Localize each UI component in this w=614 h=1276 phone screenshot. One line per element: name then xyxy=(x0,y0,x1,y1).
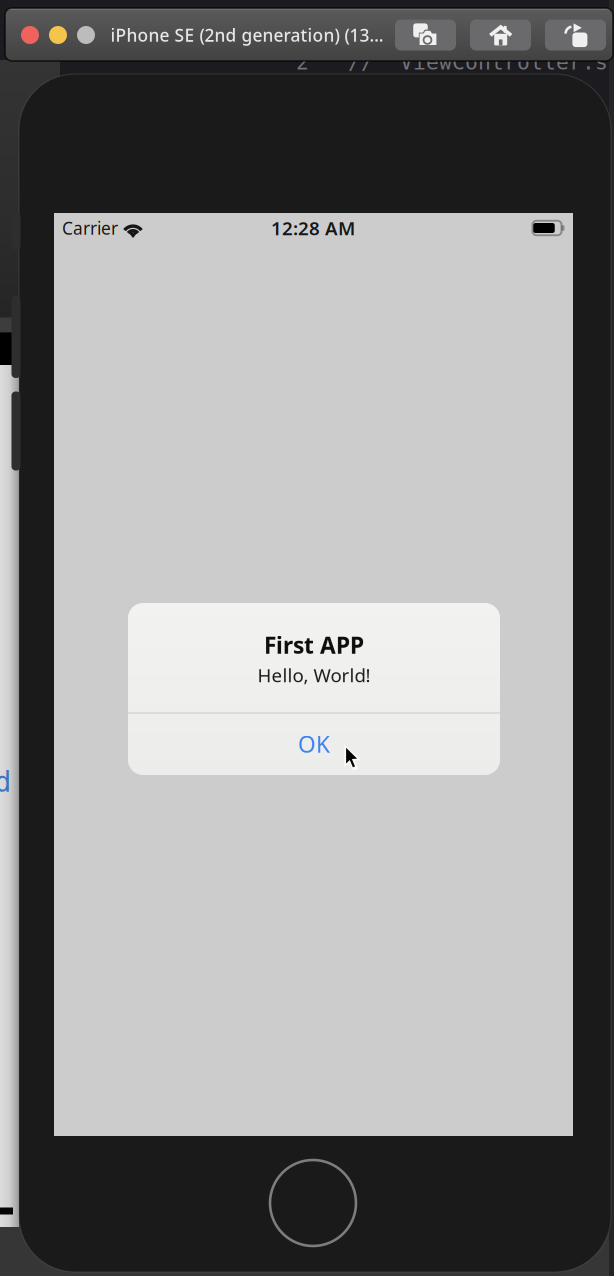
staticText: OK xyxy=(298,729,330,759)
staticText: iPhone SE (2nd generation) (13… xyxy=(110,23,383,46)
staticText: 12:28 AM xyxy=(271,216,355,240)
staticText: 2 // ViewController.s xyxy=(296,50,608,74)
staticText: First APP xyxy=(264,630,364,660)
staticText: d xyxy=(0,766,11,798)
button[interactable]: Home xyxy=(470,19,531,50)
button[interactable]: Rotate xyxy=(545,19,606,50)
staticText: Carrier xyxy=(62,216,118,239)
staticText: Hello, World! xyxy=(257,663,370,687)
button[interactable]: OK xyxy=(128,713,500,775)
button[interactable]: Screenshot xyxy=(395,19,456,50)
